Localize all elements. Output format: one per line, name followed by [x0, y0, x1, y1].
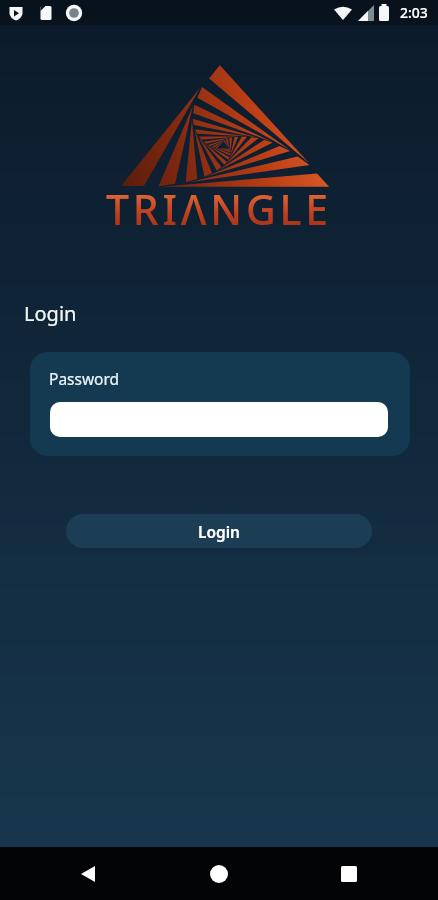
staticText: TRIΛNGLE [106, 181, 332, 237]
button[interactable] [319, 847, 379, 900]
staticText: Login [198, 521, 241, 542]
button[interactable] [50, 402, 388, 437]
staticText: Login [24, 300, 77, 327]
button[interactable] [189, 847, 249, 900]
button[interactable] [59, 847, 119, 900]
button[interactable]: Login [66, 514, 372, 548]
staticText: 2:03 [400, 3, 428, 22]
staticText: Password [49, 368, 120, 389]
